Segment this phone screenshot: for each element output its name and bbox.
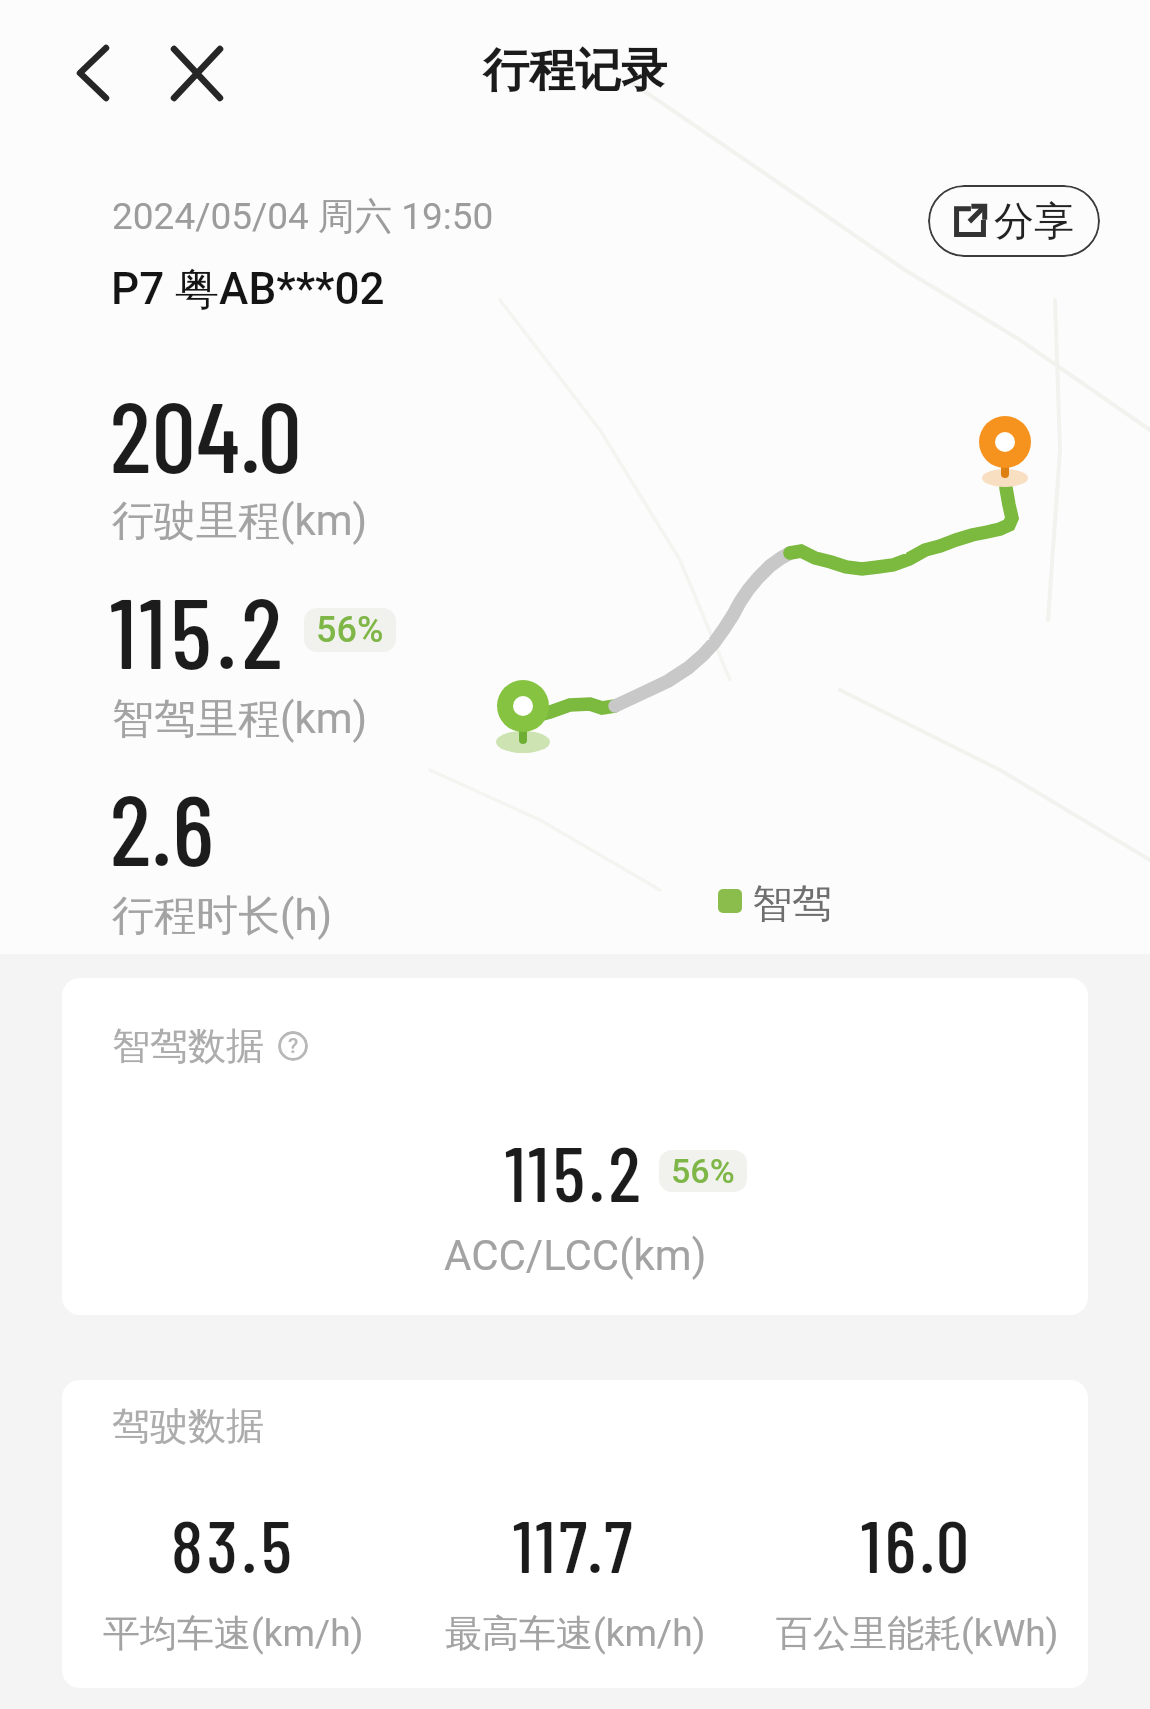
staticText: 百公里能耗(kWh) bbox=[776, 1610, 1059, 1657]
staticText: 智驾里程(km) bbox=[112, 693, 368, 746]
button[interactable] bbox=[158, 30, 234, 110]
staticText: 分享 bbox=[994, 196, 1074, 246]
staticText: ? bbox=[288, 1034, 299, 1059]
button[interactable] bbox=[58, 30, 122, 110]
staticText: 16.0 bbox=[861, 1499, 973, 1588]
staticText: 117.7 bbox=[513, 1499, 637, 1588]
staticText: 2024/05/04 周六 19:50 bbox=[112, 193, 494, 240]
staticText: 驾驶数据 bbox=[112, 1402, 264, 1450]
staticText: 204.0 bbox=[110, 375, 303, 493]
staticText: 平均车速(km/h) bbox=[103, 1610, 364, 1657]
staticText: 行驶里程(km) bbox=[112, 495, 368, 548]
staticText: 2.6 bbox=[110, 768, 215, 886]
staticText: 115.2 bbox=[110, 571, 288, 689]
staticText: 最高车速(km/h) bbox=[445, 1610, 706, 1657]
staticText: 行程记录 bbox=[483, 42, 667, 100]
staticText: 智驾 bbox=[752, 878, 832, 928]
button[interactable]: ? bbox=[278, 1031, 308, 1061]
staticText: 56% bbox=[316, 609, 384, 651]
staticText: 智驾数据 bbox=[112, 1022, 264, 1070]
button[interactable]: 分享 bbox=[928, 185, 1100, 257]
staticText: 115.2 bbox=[505, 1125, 645, 1217]
staticText: 56% bbox=[671, 1151, 735, 1191]
staticText: 行程时长(h) bbox=[112, 890, 333, 943]
staticText: P7 粤AB***02 bbox=[111, 262, 385, 317]
staticText: 83.5 bbox=[171, 1499, 296, 1588]
staticText: ACC/LCC(km) bbox=[444, 1231, 707, 1280]
